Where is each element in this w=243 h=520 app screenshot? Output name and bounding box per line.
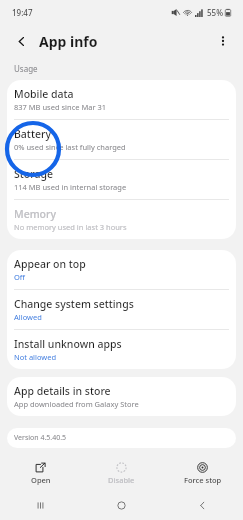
staticText: No memory used in last 3 hours <box>14 222 127 232</box>
button[interactable]: Memory <box>7 200 236 239</box>
button[interactable]: Open <box>0 456 81 490</box>
staticText: Open <box>31 475 51 485</box>
staticText: Disable <box>108 475 135 485</box>
staticText: Change system settings <box>14 297 134 311</box>
staticText: 837 MB used since Mar 31 <box>14 102 107 112</box>
staticText: Battery <box>14 127 51 141</box>
button[interactable]: App details in store <box>7 377 236 416</box>
staticText: Usage <box>14 63 38 74</box>
button[interactable]: Back <box>10 30 32 52</box>
staticText: Allowed <box>14 312 42 322</box>
button[interactable]: Recent apps <box>0 490 81 520</box>
staticText: Appear on top <box>14 257 86 271</box>
button[interactable]: Install unknown apps <box>7 330 236 369</box>
button[interactable]: More options <box>211 29 235 53</box>
button[interactable]: Storage <box>7 160 236 199</box>
staticText: 55% <box>207 7 223 18</box>
staticText: Force stop <box>184 475 222 485</box>
button[interactable]: Change system settings <box>7 290 236 329</box>
staticText: 114 MB used in internal storage <box>14 182 127 192</box>
button[interactable]: Disable <box>81 456 162 490</box>
button[interactable]: Battery <box>7 120 236 159</box>
staticText: 0% used since last fully charged <box>14 142 126 152</box>
button[interactable]: Home <box>81 490 162 520</box>
staticText: Not allowed <box>14 352 57 362</box>
staticText: Storage <box>14 167 53 181</box>
staticText: App details in store <box>14 384 111 398</box>
staticText: Install unknown apps <box>14 337 122 351</box>
button[interactable]: Mobile data <box>7 80 236 119</box>
staticText: Version 4.5.40.5 <box>14 433 67 443</box>
staticText: App info <box>39 32 98 51</box>
staticText: 19:47 <box>12 7 33 18</box>
button[interactable]: Appear on top <box>7 250 236 289</box>
staticText: App downloaded from Galaxy Store <box>14 399 139 409</box>
staticText: Off <box>14 272 26 282</box>
button[interactable]: Back <box>162 490 243 520</box>
staticText: Mobile data <box>14 87 74 101</box>
button[interactable]: Force stop <box>162 456 243 490</box>
staticText: Memory <box>14 207 57 221</box>
